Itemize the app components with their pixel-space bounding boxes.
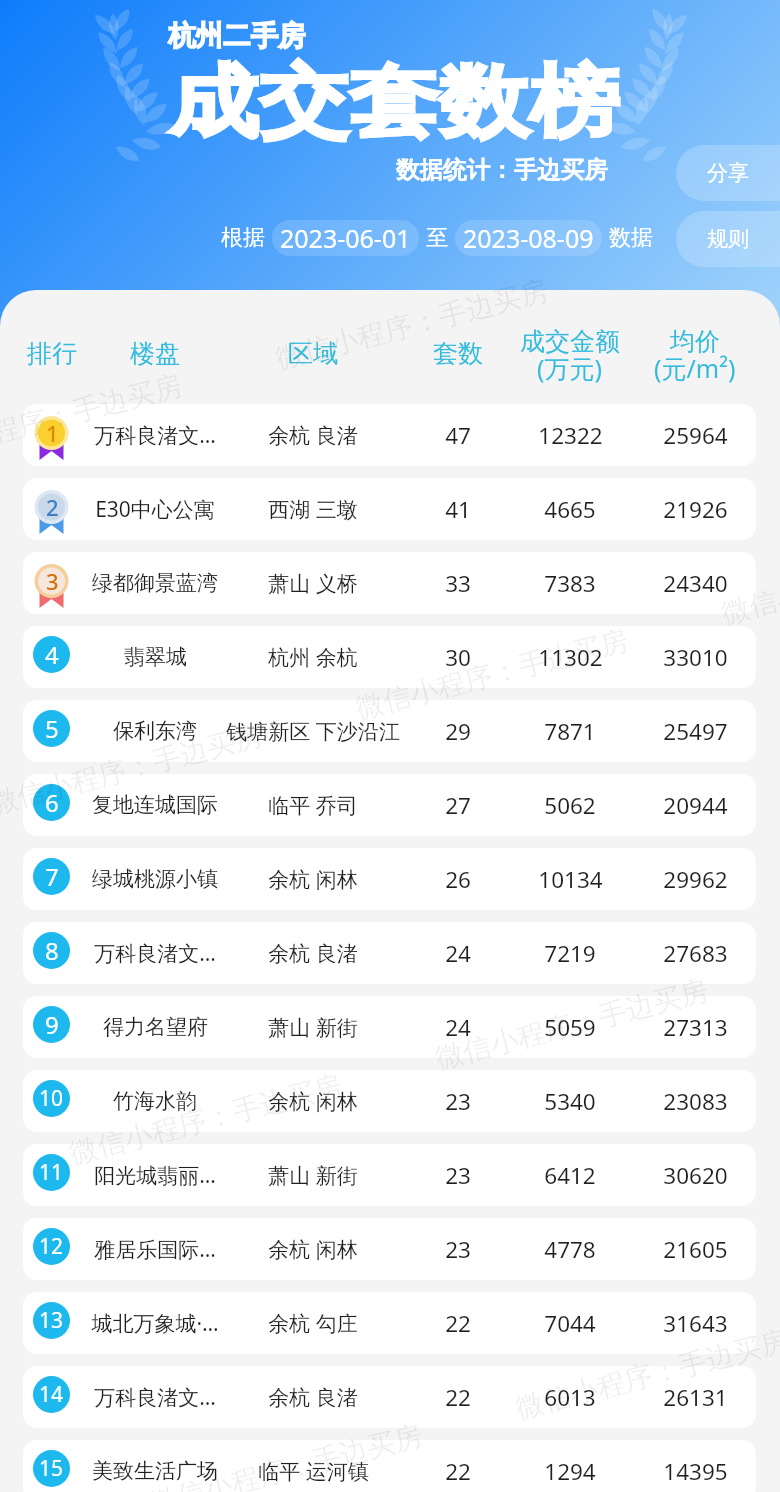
staticText: 27 xyxy=(445,790,471,821)
staticText: 余杭 闲林 xyxy=(268,1235,358,1264)
staticText: 27313 xyxy=(663,1012,728,1043)
button[interactable]: 15 xyxy=(23,1440,756,1492)
button[interactable]: 2 xyxy=(23,478,756,540)
staticText: 规则 xyxy=(707,226,749,252)
staticText: 微信小程序：手边买房 xyxy=(146,1418,426,1492)
staticText: 余杭 闲林 xyxy=(268,1087,358,1116)
staticText: 绿都御景蓝湾 xyxy=(92,570,218,596)
staticText: 余杭 勾庄 xyxy=(268,1309,358,1338)
staticText: 杭州二手房 xyxy=(168,19,306,54)
staticText: 9 xyxy=(45,1008,59,1041)
staticText: 2023-06-01 xyxy=(280,221,411,255)
staticText: 萧山 新街 xyxy=(268,1161,358,1190)
staticText: 微信小程序：手边买房 xyxy=(272,273,552,376)
staticText: 排行 xyxy=(27,338,77,369)
staticText: 微信小程序：手边买房 xyxy=(0,368,186,471)
staticText: 5059 xyxy=(544,1012,596,1043)
staticText: 14 xyxy=(39,1380,64,1409)
staticText: 7 xyxy=(45,860,59,893)
staticText: 12322 xyxy=(538,420,603,451)
staticText: 雅居乐国际… xyxy=(94,1235,216,1264)
button[interactable]: 规则 xyxy=(676,211,780,267)
staticText: 根据 xyxy=(221,224,265,252)
button[interactable]: 10 xyxy=(23,1070,756,1132)
staticText: 14395 xyxy=(663,1456,728,1487)
button[interactable]: 5 xyxy=(23,700,756,762)
staticText: 阳光城翡丽… xyxy=(94,1161,216,1190)
staticText: E30中心公寓 xyxy=(95,495,215,524)
staticText: 5 xyxy=(45,712,59,745)
staticText: 西湖 三墩 xyxy=(268,495,358,524)
staticText: 33010 xyxy=(663,642,728,673)
staticText: 26131 xyxy=(663,1382,728,1413)
staticText: 微信小程序：手边买房 xyxy=(0,718,266,821)
staticText: 套数 xyxy=(433,338,483,369)
staticText: 微信小程序：手边买房 xyxy=(718,528,780,631)
staticText: 24 xyxy=(445,1012,471,1043)
staticText: 24340 xyxy=(663,568,728,599)
staticText: 万科良渚文… xyxy=(94,1383,216,1412)
staticText: 保利东湾 xyxy=(113,718,197,744)
staticText: 微信小程序：手边买房 xyxy=(66,1068,346,1171)
staticText: 22 xyxy=(445,1382,471,1413)
button[interactable]: 13 xyxy=(23,1292,756,1354)
staticText: 31643 xyxy=(663,1308,728,1339)
staticText: 7219 xyxy=(544,938,596,969)
staticText: 分享 xyxy=(707,160,749,186)
button[interactable]: 4 xyxy=(23,626,756,688)
button[interactable]: 9 xyxy=(23,996,756,1058)
staticText: 29962 xyxy=(663,864,728,895)
staticText: 微信小程序：手边买房 xyxy=(512,1323,780,1426)
staticText: 30 xyxy=(445,642,471,673)
staticText: 30620 xyxy=(663,1160,728,1191)
staticText: 6013 xyxy=(544,1382,596,1413)
staticText: 萧山 新街 xyxy=(268,1013,358,1042)
staticText: 47 xyxy=(445,420,471,451)
staticText: 数据统计：手边买房 xyxy=(396,155,608,185)
staticText: 10 xyxy=(39,1084,64,1113)
staticText: 数据 xyxy=(609,224,653,252)
staticText: 余杭 良渚 xyxy=(268,421,358,450)
staticText: 13 xyxy=(39,1306,64,1335)
button[interactable]: 7 xyxy=(23,848,756,910)
staticText: 23083 xyxy=(663,1086,728,1117)
button[interactable]: 分享 xyxy=(676,145,780,201)
staticText: 7871 xyxy=(544,716,596,747)
staticText: 美致生活广场 xyxy=(92,1458,218,1484)
staticText: 复地连城国际 xyxy=(92,792,218,818)
staticText: 23 xyxy=(445,1086,471,1117)
staticText: 万科良渚文… xyxy=(94,939,216,968)
staticText: 12 xyxy=(39,1232,64,1261)
staticText: 5340 xyxy=(544,1086,596,1117)
button[interactable]: 6 xyxy=(23,774,756,836)
staticText: 区域 xyxy=(288,338,338,369)
button[interactable]: 12 xyxy=(23,1218,756,1280)
staticText: 22 xyxy=(445,1308,471,1339)
staticText: 6 xyxy=(45,786,59,819)
button[interactable]: 14 xyxy=(23,1366,756,1428)
button[interactable]: 8 xyxy=(23,922,756,984)
staticText: 10134 xyxy=(538,864,603,895)
staticText: 6412 xyxy=(544,1160,596,1191)
staticText: 1294 xyxy=(544,1456,596,1487)
staticText: 8 xyxy=(45,934,59,967)
button[interactable]: 3 xyxy=(23,552,756,614)
staticText: 杭州 余杭 xyxy=(268,643,358,672)
staticText: 7044 xyxy=(544,1308,596,1339)
staticText: 2 xyxy=(46,492,59,522)
button[interactable]: 1 xyxy=(23,404,756,466)
staticText: 余杭 良渚 xyxy=(268,1383,358,1412)
button[interactable]: 11 xyxy=(23,1144,756,1206)
staticText: 萧山 义桥 xyxy=(268,569,358,598)
staticText: 绿城桃源小镇 xyxy=(92,866,218,892)
staticText: 23 xyxy=(445,1160,471,1191)
staticText: 15 xyxy=(39,1454,64,1483)
staticText: 1 xyxy=(46,418,59,448)
staticText: 得力名望府 xyxy=(103,1014,208,1040)
staticText: 微信小程序：手边买房 xyxy=(352,623,632,726)
staticText: 25497 xyxy=(663,716,728,747)
staticText: 33 xyxy=(445,568,471,599)
staticText: 城北万象城·… xyxy=(91,1309,219,1338)
staticText: 钱塘新区 下沙沿江 xyxy=(226,717,400,746)
staticText: 29 xyxy=(445,716,471,747)
